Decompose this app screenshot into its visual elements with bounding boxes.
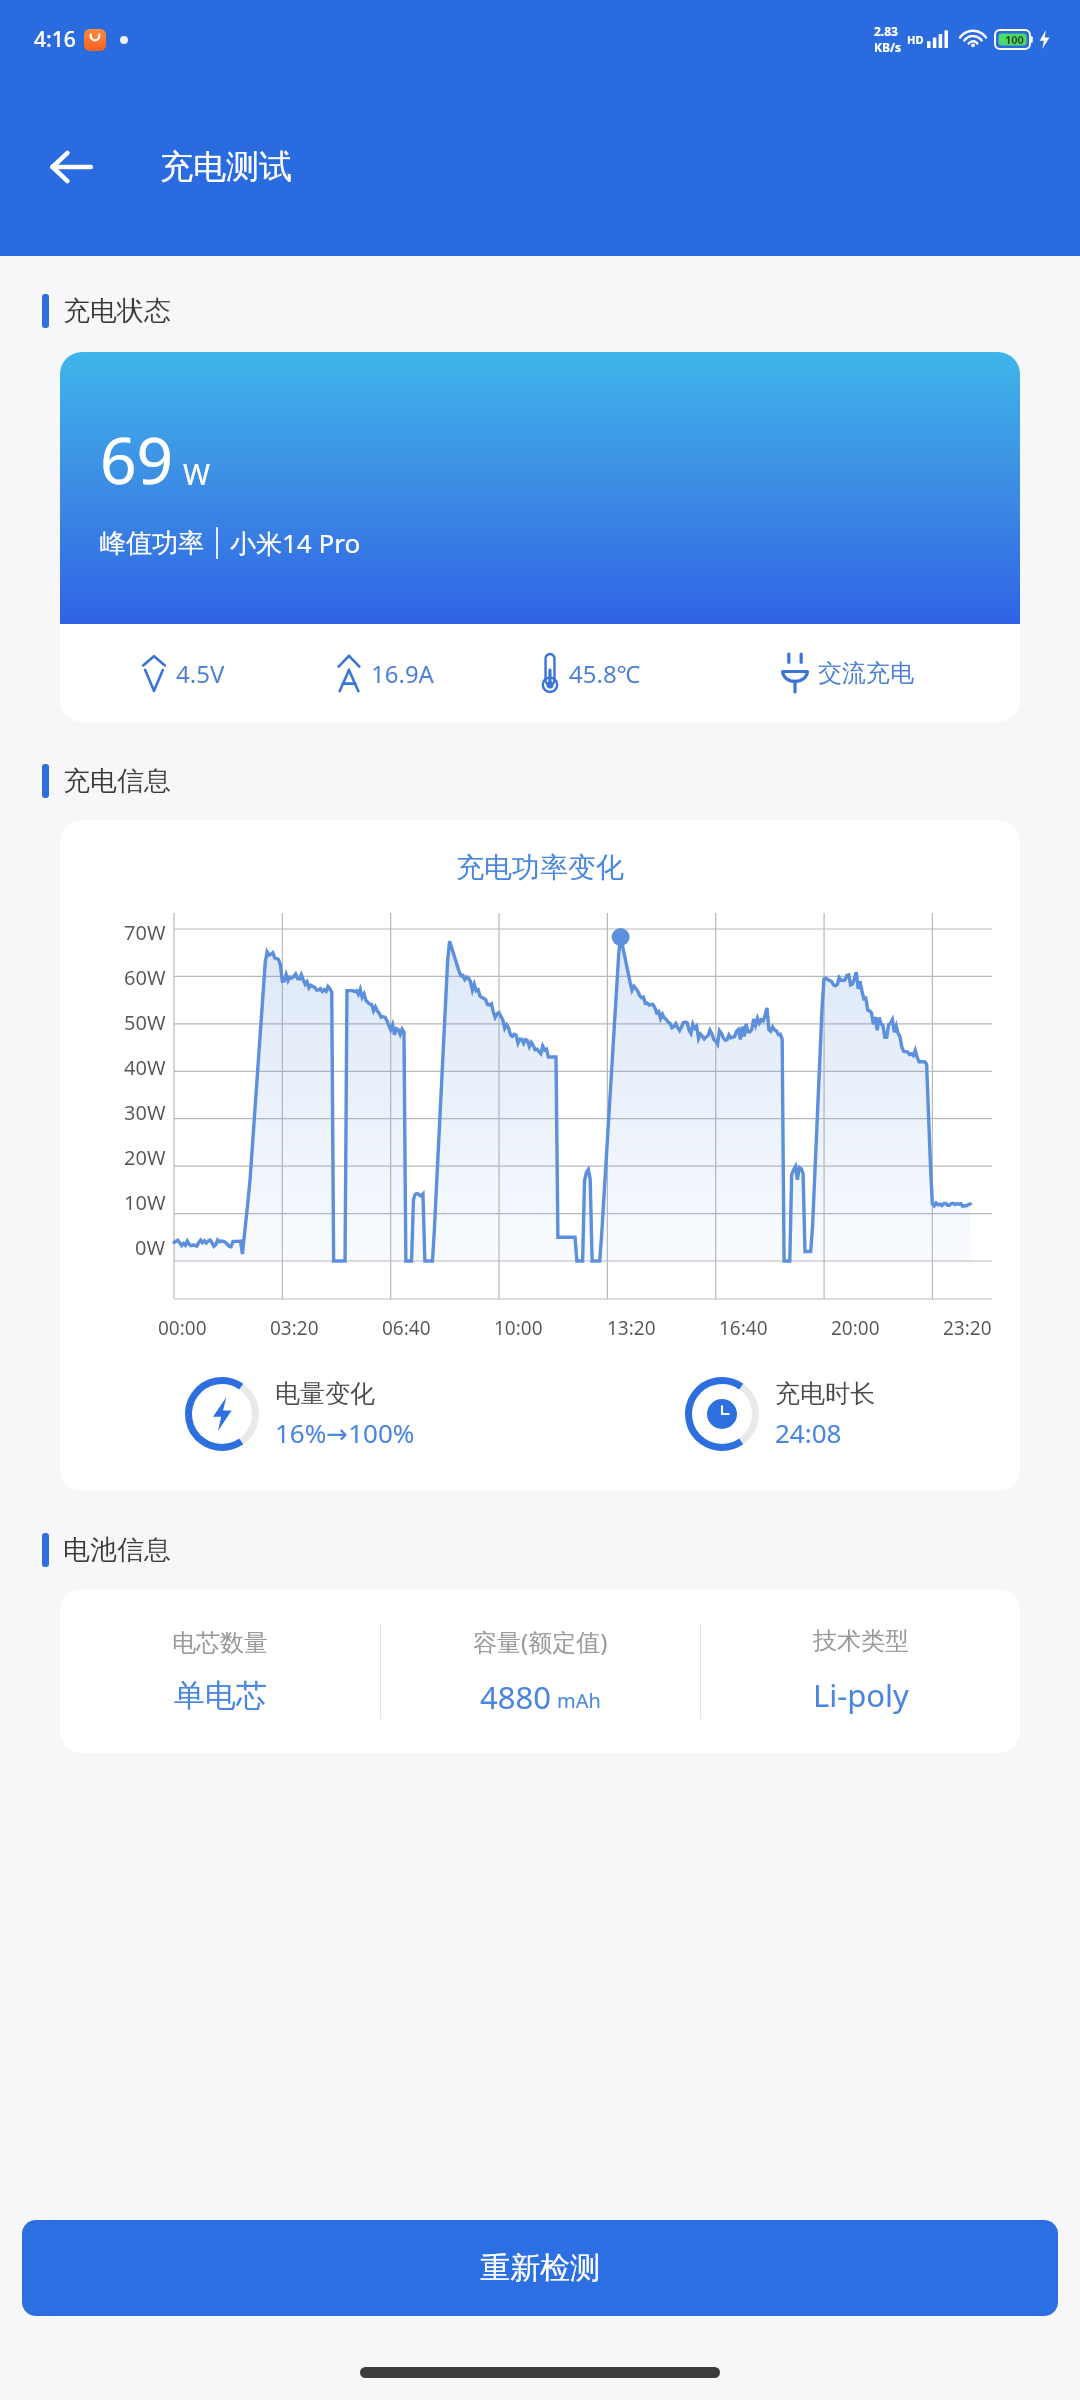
staticText: 13:20 xyxy=(607,1315,656,1341)
staticText: 23:20 xyxy=(943,1315,992,1341)
staticText: 重新检测 xyxy=(480,2249,600,2287)
staticText: 10:00 xyxy=(494,1315,543,1341)
button[interactable]: 电量变化 xyxy=(60,1377,540,1451)
staticText: 单电芯 xyxy=(174,1676,267,1715)
staticText: mAh xyxy=(557,1687,601,1714)
staticText: 充电信息 xyxy=(63,764,171,798)
staticText: KB/s xyxy=(874,39,901,55)
staticText: 45.8℃ xyxy=(569,657,641,690)
button[interactable]: 电芯数量 xyxy=(60,1589,1020,1753)
staticText: 06:40 xyxy=(382,1315,431,1341)
staticText: 00:00 xyxy=(158,1315,207,1341)
staticText: 16:40 xyxy=(719,1315,768,1341)
staticText: 20:00 xyxy=(831,1315,880,1341)
staticText: 峰值功率 xyxy=(100,527,204,560)
staticText: 电量变化 xyxy=(275,1378,375,1409)
staticText: 70W xyxy=(124,919,166,946)
staticText: 60W xyxy=(124,964,166,991)
staticText: 30W xyxy=(124,1099,166,1126)
staticText: 50W xyxy=(124,1009,166,1036)
staticText: 技术类型 xyxy=(813,1626,909,1656)
staticText: 0W xyxy=(135,1234,166,1261)
button[interactable]: 69 xyxy=(60,352,1020,722)
button[interactable]: 充电功率变化 xyxy=(60,820,1020,1491)
staticText: 69 xyxy=(100,416,174,503)
staticText: W xyxy=(183,454,210,493)
staticText: 16%→100% xyxy=(275,1415,415,1450)
staticText: 40W xyxy=(124,1054,166,1081)
staticText: 4:16 xyxy=(34,25,76,54)
staticText: 充电时长 xyxy=(775,1378,875,1409)
button[interactable]: 充电时长 xyxy=(540,1377,1020,1451)
staticText: 10W xyxy=(124,1189,166,1216)
staticText: 2.83 xyxy=(874,23,898,39)
button[interactable]: Back xyxy=(38,134,104,200)
button[interactable]: 重新检测 xyxy=(22,2220,1058,2316)
staticText: 小米14 Pro xyxy=(230,525,361,561)
staticText: HD xyxy=(907,32,924,47)
staticText: 16.9A xyxy=(371,657,434,690)
staticText: 4880 xyxy=(480,1676,551,1718)
staticText: Li-poly xyxy=(813,1674,909,1716)
staticText: 20W xyxy=(124,1144,166,1171)
staticText: 充电状态 xyxy=(63,294,171,328)
staticText: 电芯数量 xyxy=(172,1628,268,1658)
staticText: 充电功率变化 xyxy=(60,850,1020,885)
staticText: 容量(额定值) xyxy=(473,1625,608,1658)
staticText: 充电测试 xyxy=(160,146,292,188)
staticText: 4.5V xyxy=(176,657,225,690)
staticText: 交流充电 xyxy=(818,658,914,688)
staticText: 03:20 xyxy=(270,1315,319,1341)
staticText: 100 xyxy=(1005,32,1024,47)
staticText: 24:08 xyxy=(775,1415,842,1450)
staticText: 电池信息 xyxy=(63,1533,171,1567)
